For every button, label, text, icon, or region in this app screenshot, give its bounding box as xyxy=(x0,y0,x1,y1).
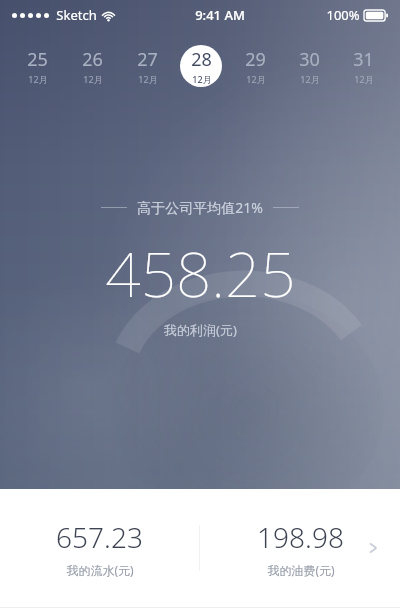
button[interactable]: 30 xyxy=(282,35,336,97)
staticText: 30 xyxy=(299,47,320,72)
button[interactable]: 查看详情 xyxy=(360,535,386,561)
staticText: 100% xyxy=(326,6,360,24)
staticText: 28 xyxy=(191,47,212,72)
button[interactable]: 27 xyxy=(120,35,174,97)
staticText: 9:41 AM xyxy=(195,6,245,24)
staticText: 12月 xyxy=(354,73,374,85)
staticText: 27 xyxy=(137,47,158,72)
button[interactable]: 28 xyxy=(174,35,228,97)
staticText: 我的油费(元) xyxy=(267,562,335,578)
staticText: 26 xyxy=(82,47,103,72)
staticText: 31 xyxy=(353,47,374,72)
staticText: 我的流水(元) xyxy=(66,562,134,578)
staticText: 29 xyxy=(245,47,266,72)
staticText: Sketch xyxy=(56,6,97,24)
staticText: 458.25 xyxy=(105,231,296,315)
staticText: 12月 xyxy=(28,73,48,85)
staticText: 12月 xyxy=(246,73,266,85)
staticText: 25 xyxy=(27,47,48,72)
button[interactable]: 29 xyxy=(228,35,282,97)
button[interactable]: 31 xyxy=(336,35,390,97)
button[interactable]: 657.23 xyxy=(0,489,199,607)
staticText: 198.98 xyxy=(257,518,344,556)
staticText: 12月 xyxy=(192,73,212,85)
button[interactable]: 25 xyxy=(10,35,65,97)
staticText: 657.23 xyxy=(56,518,143,556)
button[interactable]: 26 xyxy=(65,35,120,97)
button[interactable]: 198.98 xyxy=(200,489,400,607)
staticText: 我的利润(元) xyxy=(164,321,237,339)
staticText: 12月 xyxy=(138,73,158,85)
staticText: 高于公司平均值21% xyxy=(137,198,263,217)
staticText: 12月 xyxy=(83,73,103,85)
staticText: 12月 xyxy=(300,73,320,85)
